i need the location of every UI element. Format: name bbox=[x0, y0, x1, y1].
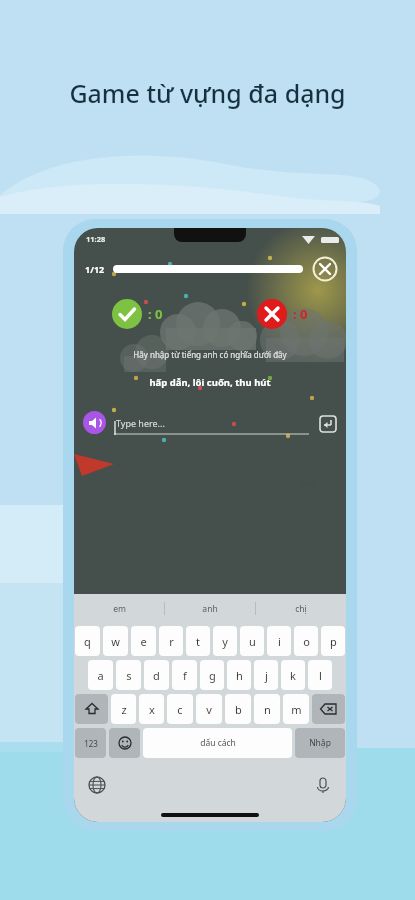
button[interactable]: chị bbox=[256, 603, 346, 615]
staticText: chị bbox=[295, 603, 307, 615]
staticText: f bbox=[183, 668, 187, 683]
button[interactable]: Change language bbox=[88, 776, 106, 794]
button[interactable]: i bbox=[267, 626, 291, 656]
staticText: k bbox=[290, 668, 296, 683]
button[interactable]: y bbox=[213, 626, 237, 656]
button[interactable]: a bbox=[88, 660, 113, 690]
staticText: z bbox=[121, 702, 127, 717]
button[interactable]: j bbox=[254, 660, 278, 690]
button[interactable]: p bbox=[321, 626, 345, 656]
staticText: u bbox=[249, 634, 256, 649]
button[interactable]: s bbox=[116, 660, 141, 690]
button[interactable]: anh bbox=[165, 603, 255, 615]
button[interactable]: Play audio bbox=[83, 411, 106, 434]
staticText: d bbox=[153, 668, 160, 683]
button[interactable]: r bbox=[159, 626, 183, 656]
button[interactable]: c bbox=[167, 694, 193, 724]
staticText: : 0 bbox=[148, 305, 163, 323]
button[interactable]: z bbox=[111, 694, 136, 724]
button[interactable]: m bbox=[283, 694, 309, 724]
button[interactable]: w bbox=[103, 626, 128, 656]
staticText: g bbox=[209, 668, 216, 683]
staticText: p bbox=[330, 634, 337, 649]
button[interactable]: u bbox=[240, 626, 264, 656]
button[interactable]: k bbox=[281, 660, 305, 690]
staticText: i bbox=[278, 634, 281, 649]
button[interactable]: l bbox=[308, 660, 332, 690]
staticText: b bbox=[235, 702, 242, 717]
button[interactable]: x bbox=[139, 694, 164, 724]
button[interactable]: Nhập bbox=[295, 728, 345, 758]
button[interactable]: t bbox=[186, 626, 210, 656]
button[interactable]: q bbox=[75, 626, 100, 656]
button[interactable]: dấu cách bbox=[143, 728, 292, 758]
staticText: hấp dẫn, lôi cuốn, thu hút bbox=[74, 376, 346, 389]
button[interactable]: 123 bbox=[75, 728, 106, 758]
staticText: e bbox=[140, 634, 147, 649]
staticText: x bbox=[149, 702, 155, 717]
staticText: 123 bbox=[84, 738, 98, 749]
staticText: j bbox=[265, 668, 268, 683]
button[interactable]: Shift bbox=[75, 694, 108, 724]
button[interactable]: em bbox=[74, 603, 164, 615]
staticText: Nhập bbox=[309, 737, 331, 749]
staticText: a bbox=[97, 668, 104, 683]
button[interactable]: Close bbox=[312, 256, 338, 282]
button[interactable]: b bbox=[225, 694, 251, 724]
staticText: r bbox=[169, 634, 174, 649]
staticText: c bbox=[177, 702, 183, 717]
staticText: 11:28 bbox=[86, 234, 106, 244]
button[interactable]: o bbox=[294, 626, 318, 656]
staticText: w bbox=[111, 634, 120, 649]
button[interactable]: Submit bbox=[317, 413, 337, 433]
staticText: s bbox=[126, 668, 132, 683]
staticText: Type here... bbox=[116, 417, 165, 429]
button[interactable]: e bbox=[131, 626, 156, 656]
button[interactable]: f bbox=[172, 660, 197, 690]
button[interactable]: h bbox=[227, 660, 251, 690]
staticText: m bbox=[291, 702, 302, 717]
staticText: : 0 bbox=[293, 305, 308, 323]
button[interactable]: n bbox=[254, 694, 280, 724]
staticText: anh bbox=[202, 603, 218, 615]
staticText: dấu cách bbox=[200, 737, 236, 749]
button[interactable]: Emoji bbox=[109, 728, 140, 758]
staticText: Hãy nhập từ tiếng anh có nghĩa dưới đây bbox=[74, 349, 346, 360]
staticText: o bbox=[303, 634, 310, 649]
staticText: y bbox=[222, 634, 228, 649]
staticText: h bbox=[236, 668, 243, 683]
staticText: em bbox=[113, 603, 126, 615]
staticText: t bbox=[196, 634, 200, 649]
button[interactable]: d bbox=[144, 660, 169, 690]
staticText: v bbox=[206, 702, 212, 717]
staticText: n bbox=[264, 702, 271, 717]
button[interactable]: g bbox=[200, 660, 224, 690]
staticText: q bbox=[84, 634, 91, 649]
staticText: Game từ vựng đa dạng bbox=[69, 76, 346, 110]
button[interactable]: Backspace bbox=[312, 694, 345, 724]
staticText: 1/12 bbox=[85, 263, 105, 275]
button[interactable]: v bbox=[196, 694, 222, 724]
button[interactable]: Type here... bbox=[114, 412, 309, 434]
button[interactable]: Voice input bbox=[314, 776, 332, 794]
staticText: l bbox=[319, 668, 322, 683]
